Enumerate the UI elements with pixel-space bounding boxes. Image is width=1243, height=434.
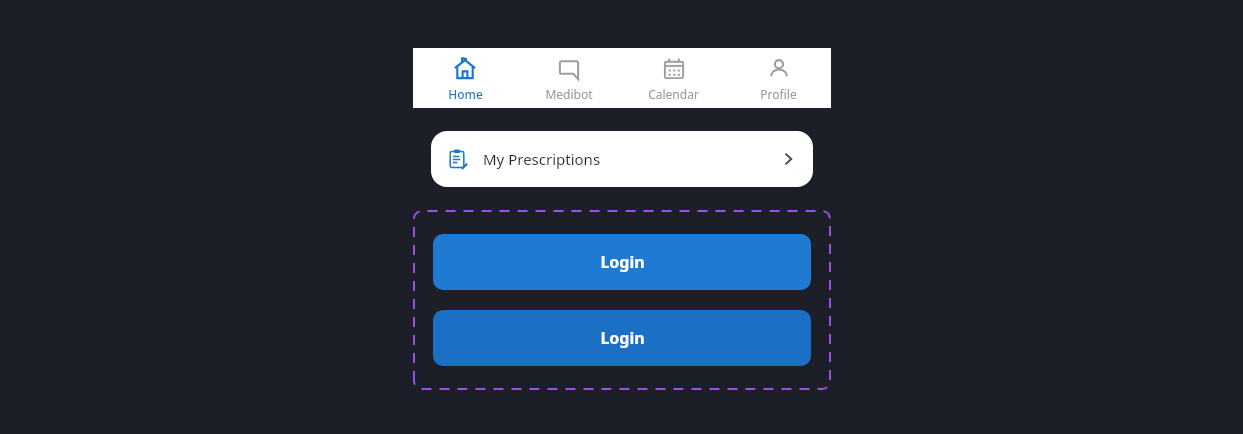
staticText: My Prescriptions [483,149,601,169]
staticText: Login [600,327,645,349]
other: Open prescriptions [779,150,797,168]
button[interactable]: Profile [726,48,831,108]
staticText: Home [448,86,483,102]
staticText: Login [600,251,645,273]
staticText: Profile [760,86,797,102]
button[interactable]: Calendar [621,48,726,108]
button[interactable]: Home [413,48,517,108]
button[interactable]: My Prescriptions [431,131,813,187]
staticText: Calendar [648,86,699,102]
staticText: Medibot [545,86,593,102]
button[interactable]: Login [433,310,811,366]
button[interactable]: Medibot [517,48,621,108]
button[interactable]: Login [433,234,811,290]
